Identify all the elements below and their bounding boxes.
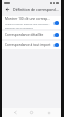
button[interactable]: Montrer 100 clé une correspondance	[2, 16, 61, 29]
button[interactable]: Applications récentes	[45, 109, 52, 116]
staticText: Correspondance détaillée	[5, 33, 51, 37]
staticText: éléments de clé indiqués	[5, 26, 33, 29]
staticText: Définition de correspondance	[13, 7, 59, 12]
button[interactable]: Activer	[53, 21, 59, 25]
staticText: Correspondance à tout import	[5, 43, 51, 47]
button[interactable]: Correspondance à tout import	[2, 41, 61, 49]
staticText: Montrer 100 clé une correspondance	[5, 17, 51, 21]
button[interactable]: Accueil	[28, 109, 35, 116]
staticText: Active et met en balance une corresponda…	[5, 22, 51, 25]
button[interactable]: Retour	[12, 109, 19, 116]
button[interactable]: Correspondance détaillée	[2, 31, 61, 39]
button[interactable]: Retour	[4, 6, 11, 13]
button[interactable]: Activer	[53, 43, 59, 47]
button[interactable]: Activer	[53, 33, 59, 37]
